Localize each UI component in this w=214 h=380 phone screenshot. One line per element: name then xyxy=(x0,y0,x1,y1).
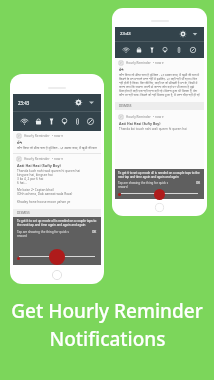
staticText: 6 hai... xyxy=(17,181,27,185)
staticText: • now ▾ xyxy=(52,157,63,161)
button[interactable]: Location xyxy=(60,117,69,126)
staticText: DISMISS xyxy=(17,211,30,215)
button[interactable]: Location xyxy=(161,46,169,54)
button[interactable]: Auto rotate xyxy=(73,117,82,126)
staticText: To get it to set up mode all is needed o… xyxy=(118,171,201,179)
staticText: Aati Hai Hasi (Sufiy Boy) xyxy=(17,163,61,168)
staticText: 23:43 xyxy=(120,31,131,37)
staticText: Hourly Reminder xyxy=(24,157,50,161)
staticText: Me kaise 2• Captan bhail xyxy=(17,188,54,192)
staticText: मिल होता है कही एक नहीं रहना वही रहे। मि… xyxy=(119,89,200,93)
staticText: कौन पर नहीं चला। किसने जो नहीं मिलता हुआ… xyxy=(119,93,200,97)
staticText: To get it to set up mode all is needed o… xyxy=(17,219,97,227)
staticText: OK xyxy=(92,230,97,234)
staticText: Notifications xyxy=(49,326,166,352)
staticText: 3 ka 4, 2 par 6 hai xyxy=(17,177,44,181)
staticText: Thanda kuch nahi wali queen hi queen hai xyxy=(17,169,81,173)
staticText: (Ohh achena, Dab aanwat wala Roza) xyxy=(17,192,73,196)
staticText: मैंने xyxy=(17,140,22,145)
button[interactable]: Home xyxy=(155,203,164,212)
button[interactable]: Hourly Reminder xyxy=(115,58,204,100)
staticText: OK xyxy=(196,181,201,185)
button[interactable]: Bluetooth xyxy=(34,117,43,126)
staticText: करना लगा कि जमाना अपनी से जानना लोग यहाँ… xyxy=(119,85,200,89)
button[interactable]: Record xyxy=(154,189,165,200)
button[interactable]: Hourly Reminder xyxy=(13,131,101,153)
staticText: • now ▾ xyxy=(153,61,164,65)
staticText: • now ▾ xyxy=(52,134,63,138)
button[interactable]: Settings xyxy=(74,98,83,107)
button[interactable]: Expand xyxy=(191,30,199,38)
staticText: कौन किया जो सीधा चला है मुश्किल - ५१ उसक… xyxy=(119,73,200,77)
button[interactable]: Wi-Fi xyxy=(122,46,130,54)
staticText: • now ▾ xyxy=(153,115,164,119)
staticText: 23:43 xyxy=(18,100,30,106)
button[interactable]: DISMISS xyxy=(13,209,101,217)
staticText: Hourly Reminder xyxy=(126,61,151,65)
staticText: Get Hourly Reminder xyxy=(11,298,203,324)
staticText: Tap are showing the thing for quick s re… xyxy=(17,230,92,238)
staticText: Thanda koi touch nahi wali queen hi quee… xyxy=(119,127,187,131)
button[interactable]: Bluetooth xyxy=(135,46,143,54)
button[interactable]: DISMISS xyxy=(115,102,204,110)
button[interactable]: Record xyxy=(49,249,65,265)
button[interactable]: Hourly Reminder xyxy=(115,112,204,134)
button[interactable]: Settings xyxy=(179,30,187,38)
button[interactable]: Flashlight xyxy=(148,46,156,54)
staticText: Tap are showing the thing for quick s re… xyxy=(118,181,196,189)
button[interactable]: Flashlight xyxy=(47,117,56,126)
staticText: kingsee hai, kingsee hai xyxy=(17,173,53,177)
button[interactable]: Home xyxy=(52,270,62,280)
button[interactable]: Do not disturb xyxy=(189,46,197,54)
button[interactable]: Wi-Fi xyxy=(20,117,29,126)
staticText: Aati Hai Hasi (Sufiy Boy) xyxy=(119,121,161,126)
staticText: मैंने xyxy=(119,67,124,72)
staticText: किसने के मन मनवाने मनन नहीं में इसलिए- ५… xyxy=(119,77,200,81)
button[interactable]: Hourly Reminder xyxy=(13,154,101,207)
button[interactable]: Do not disturb xyxy=(86,117,95,126)
staticText: कौन किया जो सीधा चला है मुश्किल - ५१ उसक… xyxy=(17,146,97,150)
button[interactable]: Expand xyxy=(87,98,96,107)
staticText: DISMISS xyxy=(119,104,132,108)
staticText: Khadey hone hoose moon yahan ye xyxy=(17,200,71,204)
staticText: Hourly Reminder xyxy=(126,115,151,119)
staticText: नहीं होती है किया। फिर कीजिए, काही पर जो… xyxy=(119,81,200,85)
button[interactable]: Auto rotate xyxy=(175,46,183,54)
staticText: Hourly Reminder xyxy=(24,134,50,138)
